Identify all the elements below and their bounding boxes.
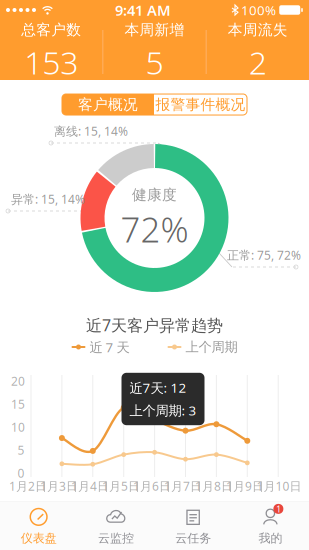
staticText: 1月8日 — [195, 478, 233, 494]
staticText: 正常: 75, 72% — [227, 247, 301, 263]
button[interactable]: 仪表盘 — [0, 501, 77, 550]
button[interactable]: 报警事件概况 — [154, 94, 247, 115]
staticText: 总客户数 — [21, 21, 81, 39]
staticText: 72% — [120, 206, 188, 252]
staticText: 报警事件概况 — [155, 95, 245, 113]
staticText: 15 — [11, 396, 25, 412]
staticText: 客户概况 — [78, 95, 138, 113]
staticText: 1月2日 — [9, 478, 47, 494]
staticText: 云监控 — [98, 531, 134, 546]
staticText: 1月10日 — [256, 478, 301, 494]
staticText: 本周新增 — [124, 21, 184, 39]
staticText: 本周流失 — [228, 21, 288, 39]
staticText: 100% — [241, 1, 276, 19]
staticText: 1月5日 — [102, 478, 140, 494]
staticText: 异常: 15, 14% — [11, 191, 85, 207]
staticText: 近7天客户异常趋势 — [86, 314, 223, 336]
staticText: 近 7 天 — [89, 338, 129, 356]
staticText: 5 — [145, 41, 163, 83]
staticText: 1月3日 — [40, 478, 78, 494]
staticText: 153 — [24, 41, 78, 83]
button[interactable]: 云任务 — [154, 501, 232, 550]
staticText: 1月9日 — [226, 478, 264, 494]
staticText: 离线: 15, 14% — [54, 123, 128, 139]
staticText: 近7天: 12 — [129, 379, 186, 396]
staticText: 上个周期: 3 — [129, 401, 196, 419]
staticText: 0 — [17, 465, 24, 481]
staticText: 健康度 — [132, 186, 177, 204]
staticText: 上个周期 — [185, 339, 237, 355]
staticText: 仪表盘 — [21, 531, 57, 546]
button[interactable]: 云监控 — [77, 501, 154, 550]
staticText: 1月7日 — [164, 478, 202, 494]
staticText: 20 — [11, 373, 25, 389]
staticText: 9:41 AM — [115, 0, 171, 20]
staticText: 我的 — [258, 531, 282, 546]
button[interactable]: 客户概况 — [62, 94, 154, 115]
staticText: 1月6日 — [133, 478, 171, 494]
staticText: 1月4日 — [71, 478, 109, 494]
staticText: 10 — [11, 419, 25, 435]
staticText: 2 — [249, 41, 267, 83]
staticText: 云任务 — [175, 531, 211, 546]
button[interactable]: 1 — [232, 501, 309, 550]
staticText: 1 — [276, 503, 281, 515]
staticText: 5 — [17, 442, 24, 458]
